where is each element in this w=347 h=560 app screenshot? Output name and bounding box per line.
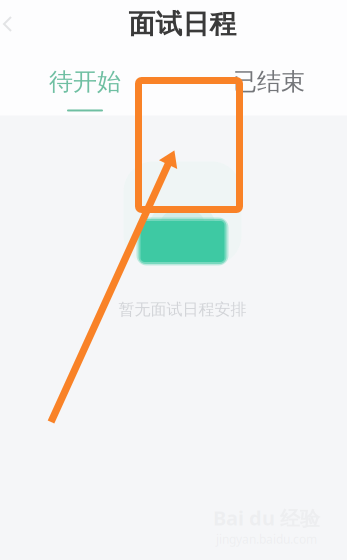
staticText: 面试日程 (128, 8, 236, 40)
button[interactable]: Back (0, 2, 32, 46)
staticText: 暂无面试日程安排 (118, 299, 246, 319)
staticText: 待开始 (49, 67, 121, 96)
button[interactable]: 待开始 (44, 67, 126, 111)
staticText: 已结束 (233, 67, 305, 96)
button[interactable]: 已结束 (228, 67, 310, 111)
staticText: Bai du 经验 (213, 504, 320, 531)
